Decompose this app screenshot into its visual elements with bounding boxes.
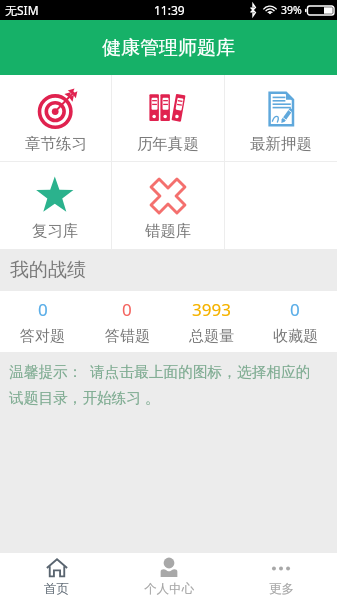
- staticText: 章节练习: [25, 134, 87, 154]
- button[interactable]: 3993: [169, 291, 253, 352]
- staticText: 最新押题: [250, 134, 312, 154]
- button[interactable]: 0: [0, 291, 85, 352]
- staticText: 答错题: [105, 327, 150, 346]
- staticText: 首页: [44, 581, 69, 597]
- button[interactable]: 0: [85, 291, 169, 352]
- staticText: 试题目录，开始练习 。: [9, 387, 160, 407]
- staticText: 历年真题: [137, 134, 199, 154]
- button[interactable]: 章节练习: [0, 75, 111, 161]
- button[interactable]: 个人中心: [113, 553, 225, 600]
- staticText: 39%: [281, 3, 302, 17]
- button[interactable]: 复习库: [0, 162, 111, 249]
- staticText: 0: [290, 298, 300, 321]
- button[interactable]: 错题库: [112, 162, 224, 249]
- staticText: 3993: [192, 298, 231, 321]
- staticText: 0: [122, 298, 132, 321]
- staticText: 我的战绩: [10, 258, 86, 282]
- staticText: 温馨提示： 请点击最上面的图标，选择相应的: [9, 361, 311, 381]
- button[interactable]: 0: [253, 291, 337, 352]
- staticText: 收藏题: [273, 327, 318, 346]
- staticText: 复习库: [32, 221, 79, 241]
- staticText: 更多: [269, 581, 294, 597]
- staticText: 总题量: [189, 327, 234, 346]
- staticText: 11:39: [154, 2, 185, 18]
- staticText: 0: [38, 298, 48, 321]
- button[interactable]: 最新押题: [225, 75, 337, 161]
- staticText: 个人中心: [144, 581, 194, 597]
- staticText: 错题库: [145, 221, 192, 241]
- button[interactable]: 首页: [0, 553, 113, 600]
- staticText: 健康管理师题库: [102, 36, 235, 60]
- button[interactable]: 更多: [225, 553, 337, 600]
- button[interactable]: 历年真题: [112, 75, 224, 161]
- staticText: 答对题: [20, 327, 65, 346]
- staticText: 无SIM: [5, 2, 39, 18]
